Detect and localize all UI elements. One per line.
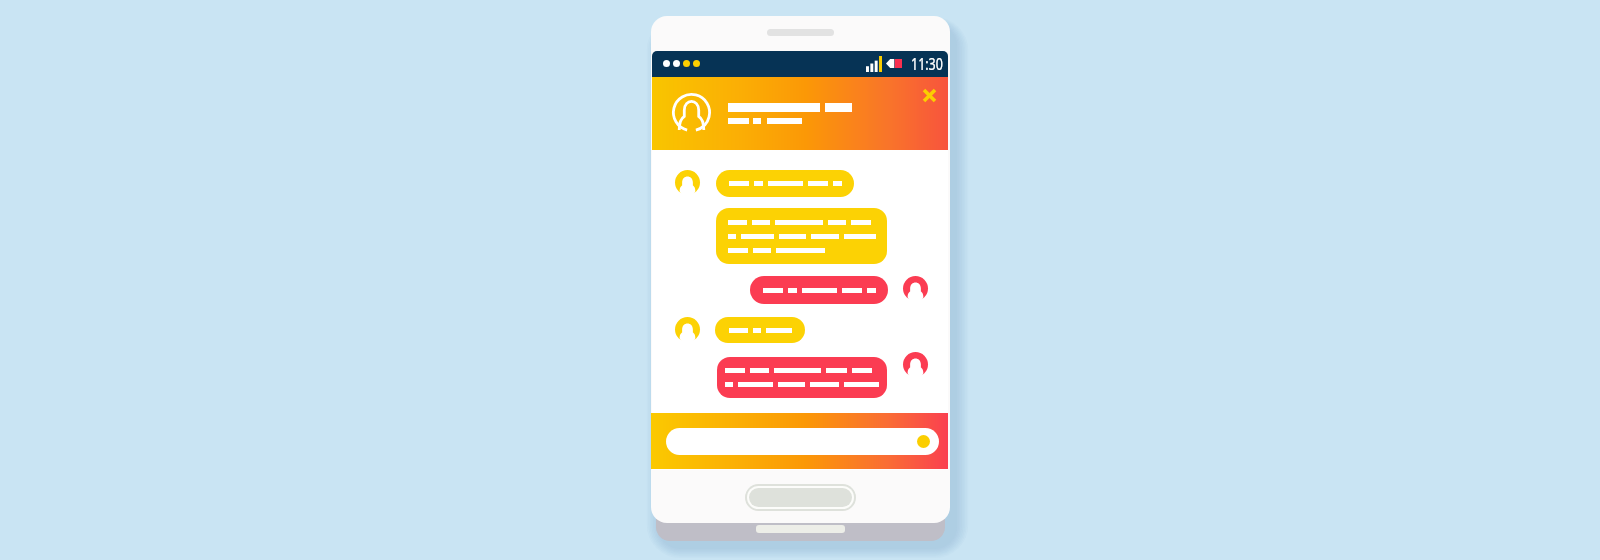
button[interactable]: Close (915, 81, 943, 109)
button[interactable]: Home (749, 488, 852, 507)
button[interactable] (715, 317, 805, 343)
button[interactable] (666, 428, 939, 455)
staticText: 11:30 (911, 52, 943, 75)
button[interactable] (716, 208, 887, 264)
button[interactable] (716, 170, 854, 197)
button[interactable] (717, 357, 887, 398)
button[interactable] (750, 276, 888, 304)
